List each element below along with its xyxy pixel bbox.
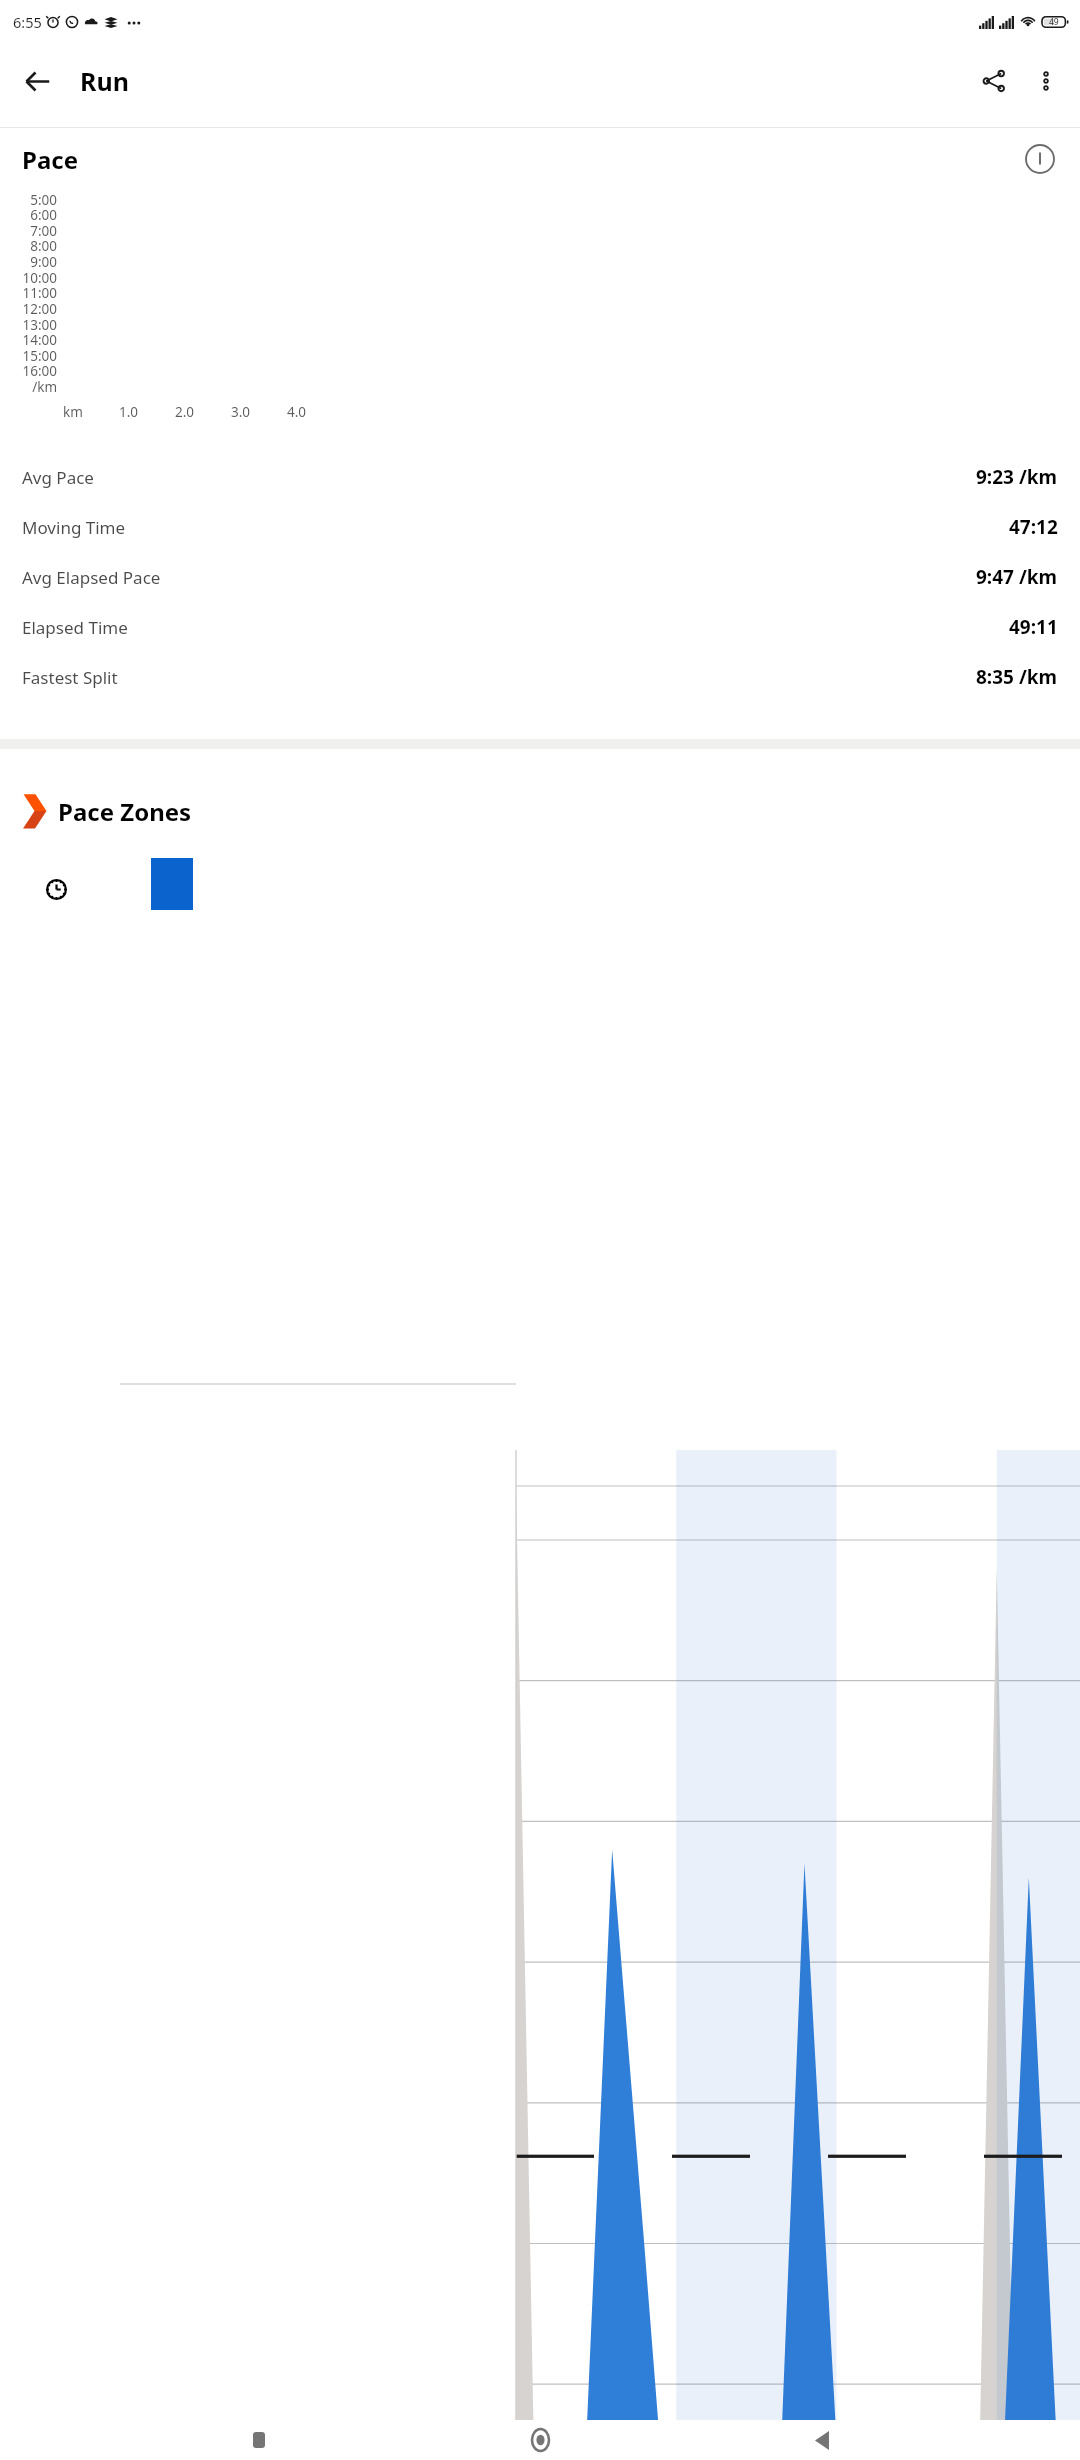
staticText: 12:00 [5, 300, 57, 318]
staticText: 11:00 [5, 284, 57, 302]
staticText: 49:11 [1009, 614, 1058, 640]
button[interactable]: Elapsed Time [0, 602, 1080, 652]
staticText: Pace [22, 143, 78, 176]
staticText: 6:55 [13, 12, 42, 32]
staticText: Run [80, 64, 129, 98]
staticText: 49 [1049, 16, 1059, 28]
staticText: 4.0 [287, 403, 307, 421]
button[interactable]: Fastest Split [0, 652, 1080, 702]
button[interactable]: Info [1018, 137, 1062, 181]
staticText: 9:47 /km [976, 564, 1058, 590]
staticText: 13:00 [5, 316, 57, 334]
staticText: 6:00 [5, 206, 57, 224]
staticText: 3.0 [231, 403, 251, 421]
staticText: Fastest Split [22, 666, 118, 689]
button[interactable]: Recent apps [236, 2420, 282, 2460]
staticText: 8:35 /km [976, 664, 1058, 690]
button[interactable]: Avg Pace [0, 452, 1080, 502]
staticText: Elapsed Time [22, 616, 128, 639]
button[interactable]: Share [968, 55, 1020, 107]
button[interactable]: Pace Zones [22, 792, 1080, 830]
staticText: 10:00 [5, 269, 57, 287]
button[interactable]: Time in zone [39, 866, 73, 912]
button[interactable]: Moving Time [0, 502, 1080, 552]
staticText: 14:00 [5, 331, 57, 349]
staticText: 2.0 [175, 403, 195, 421]
staticText: 8:00 [5, 237, 57, 255]
staticText: 7:00 [5, 222, 57, 240]
staticText: 1.0 [119, 403, 139, 421]
button[interactable]: Back [799, 2420, 845, 2460]
staticText: km [63, 403, 83, 421]
button[interactable]: More options [1020, 55, 1072, 107]
staticText: 47:12 [1009, 514, 1058, 540]
staticText: 5:00 [5, 191, 57, 209]
button[interactable]: Back [10, 54, 64, 108]
staticText: Pace Zones [58, 795, 192, 828]
staticText: Avg Elapsed Pace [22, 566, 161, 589]
staticText: 9:00 [5, 253, 57, 271]
staticText: 15:00 [5, 347, 57, 365]
button[interactable]: Home [517, 2420, 563, 2460]
staticText: 9:23 /km [976, 464, 1058, 490]
button[interactable]: Avg Elapsed Pace [0, 552, 1080, 602]
staticText: Moving Time [22, 516, 126, 539]
staticText: 16:00 [5, 362, 57, 380]
staticText: Avg Pace [22, 466, 94, 489]
staticText: /km [5, 378, 57, 396]
